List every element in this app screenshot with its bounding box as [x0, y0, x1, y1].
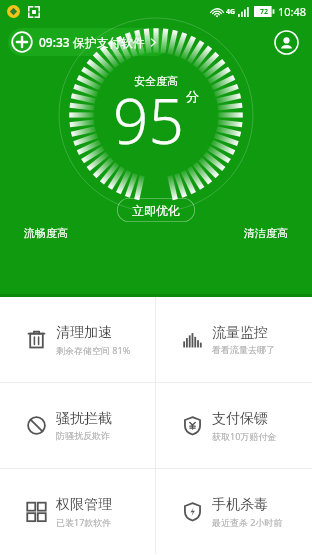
staticText: 流畅度高 [24, 226, 68, 240]
staticText: 72 [260, 7, 269, 17]
staticText: 防骚扰反欺诈 [56, 430, 110, 441]
button[interactable]: 立即优化 [117, 198, 195, 222]
staticText: 4G [226, 7, 236, 17]
button[interactable]: 支付保镖 [156, 383, 312, 468]
staticText: 最近查杀 2小时前 [212, 516, 283, 528]
staticText: 骚扰拦截 [56, 410, 112, 428]
staticText: 09:33 保护支付软件 [39, 34, 145, 50]
staticText: 安全度高 [134, 74, 178, 88]
staticText: 已装17款软件 [56, 516, 112, 528]
button[interactable]: 权限管理 [0, 469, 156, 554]
staticText: 清理加速 [56, 324, 112, 342]
staticText: 权限管理 [56, 496, 112, 514]
staticText: 剩余存储空间 81% [56, 344, 131, 356]
staticText: 95 [113, 78, 184, 162]
button[interactable]: 清理加速 [0, 297, 156, 382]
staticText: 立即优化 [132, 203, 180, 218]
button[interactable]: 流量监控 [156, 297, 312, 382]
staticText: 支付保镖 [212, 410, 268, 428]
button[interactable]: Account [272, 28, 300, 56]
staticText: 10:48 [278, 4, 307, 19]
staticText: 流量监控 [212, 324, 268, 342]
staticText: 获取10万赔付金 [212, 430, 277, 442]
button[interactable]: 09:33 保护支付软件 [8, 28, 169, 56]
button[interactable]: 手机杀毒 [156, 469, 312, 554]
button[interactable]: 骚扰拦截 [0, 383, 156, 468]
staticText: 看看流量去哪了 [212, 344, 275, 355]
staticText: 手机杀毒 [212, 496, 268, 514]
staticText: 分 [186, 88, 199, 104]
staticText: 清洁度高 [244, 226, 288, 240]
